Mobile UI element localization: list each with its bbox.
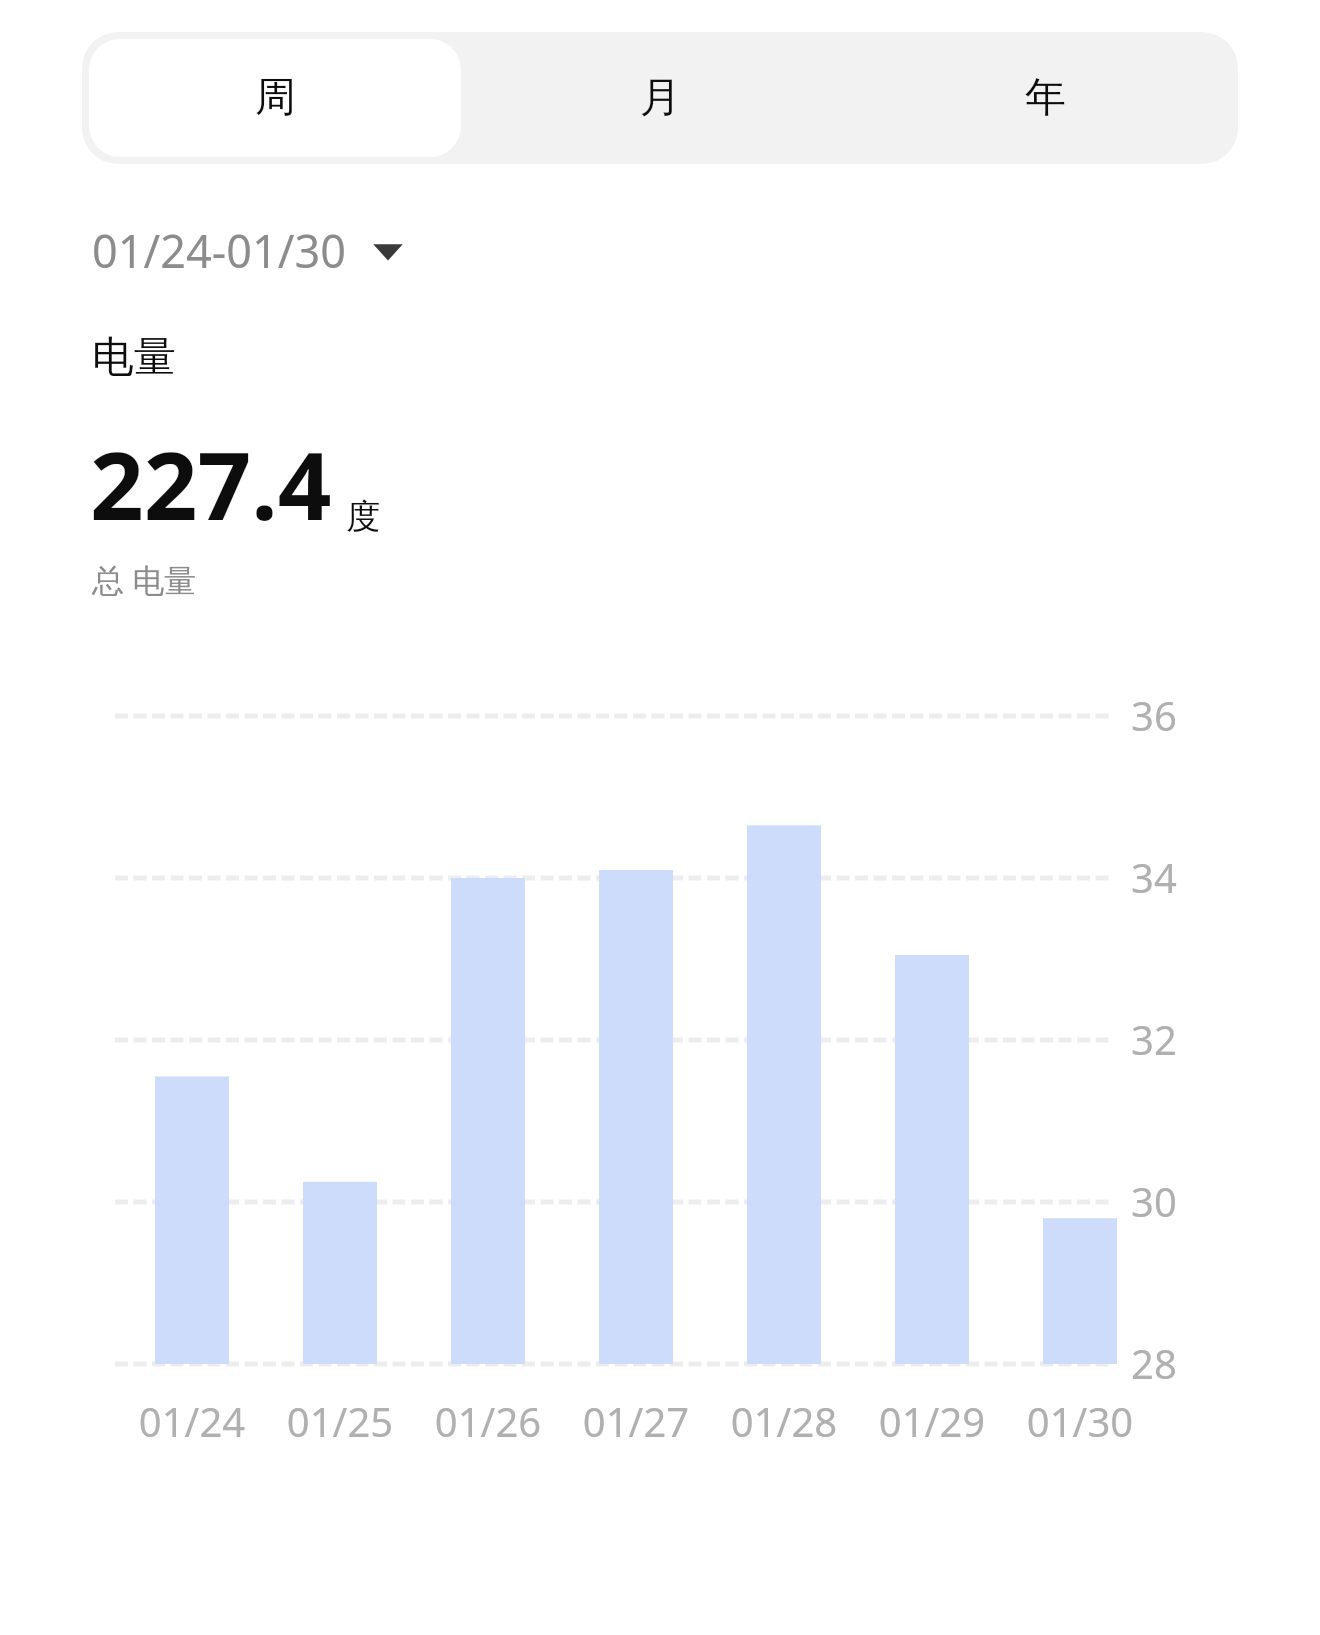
button[interactable]: 年: [860, 39, 1231, 157]
staticText: 28: [1131, 1336, 1177, 1390]
staticText: 01/26: [423, 1394, 553, 1448]
staticText: 01/30: [1015, 1394, 1145, 1448]
staticText: 30: [1131, 1174, 1177, 1228]
staticText: 月: [640, 72, 681, 124]
staticText: 01/25: [275, 1394, 405, 1448]
staticText: 01/29: [867, 1394, 997, 1448]
staticText: 36: [1131, 688, 1177, 742]
staticText: 01/24: [127, 1394, 257, 1448]
staticText: 年: [1025, 72, 1066, 124]
staticText: 度: [346, 495, 380, 538]
staticText: 227.4: [90, 420, 332, 548]
staticText: 电量: [92, 331, 176, 384]
button[interactable]: 周: [89, 39, 461, 157]
other: Change date range: [372, 239, 404, 263]
button[interactable]: 01/24-01/30: [92, 220, 404, 281]
staticText: 32: [1131, 1012, 1177, 1066]
staticText: 周: [255, 72, 296, 124]
staticText: 总 电量: [92, 558, 197, 602]
staticText: 34: [1131, 850, 1177, 904]
staticText: 01/28: [719, 1394, 849, 1448]
staticText: 01/24-01/30: [92, 220, 346, 281]
button[interactable]: 月: [475, 39, 846, 157]
staticText: 01/27: [571, 1394, 701, 1448]
